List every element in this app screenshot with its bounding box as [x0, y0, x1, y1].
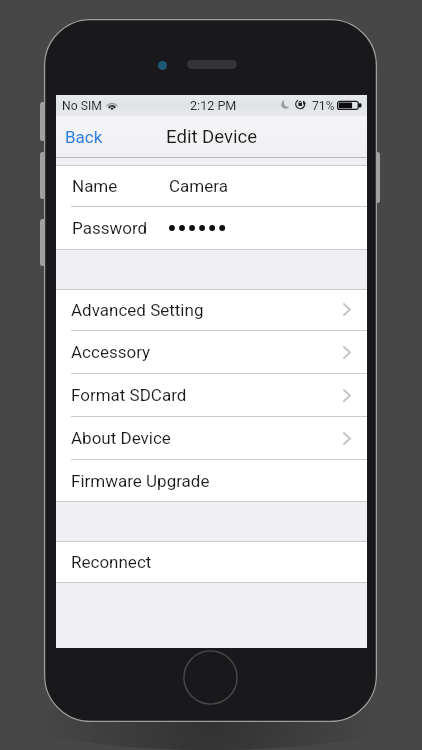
button[interactable]: Back [56, 121, 113, 153]
staticText: No SIM [62, 99, 102, 113]
button[interactable]: Format SDCard [56, 374, 367, 416]
staticText: Edit Device [166, 126, 258, 148]
button[interactable]: Name [56, 165, 367, 206]
staticText: Camera [169, 176, 228, 196]
staticText: Format SDCard [71, 385, 343, 405]
button[interactable]: Password [56, 207, 367, 249]
staticText: Firmware Upgrade [71, 471, 367, 491]
staticText: Reconnect [71, 552, 367, 572]
button[interactable]: Reconnect [56, 541, 367, 583]
staticText: Accessory [71, 342, 343, 362]
staticText: 2:12 PM [190, 98, 237, 113]
staticText: Password [72, 218, 169, 238]
button[interactable]: Advanced Setting [56, 289, 367, 330]
staticText: 71% [312, 99, 335, 113]
button[interactable]: Firmware Upgrade [56, 460, 367, 502]
button[interactable]: About Device [56, 417, 367, 459]
staticText: Name [72, 176, 169, 196]
staticText: About Device [71, 428, 343, 448]
staticText: Advanced Setting [71, 300, 343, 320]
button[interactable]: Accessory [56, 331, 367, 373]
staticText: Back [65, 127, 103, 147]
